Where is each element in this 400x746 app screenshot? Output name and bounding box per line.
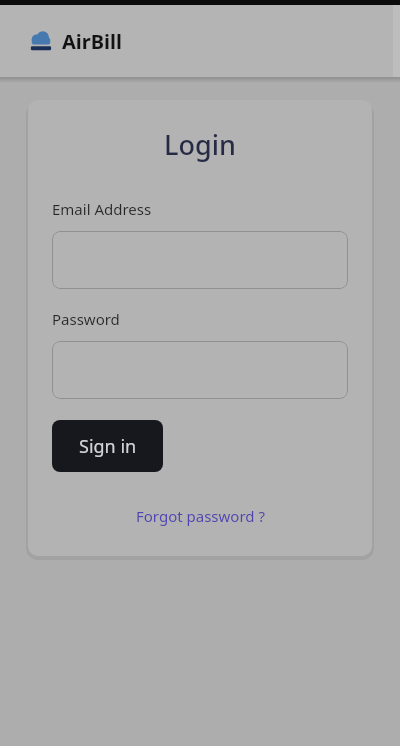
staticText: Sign in xyxy=(79,434,137,459)
staticText: Forgot password ? xyxy=(136,506,265,526)
staticText: Login xyxy=(52,126,348,163)
staticText: AirBill xyxy=(62,28,122,55)
staticText: Email Address xyxy=(52,199,152,219)
button[interactable] xyxy=(52,231,348,289)
button[interactable]: Sign in xyxy=(52,420,163,472)
button[interactable]: Forgot password ? xyxy=(136,506,265,526)
button[interactable] xyxy=(52,341,348,399)
staticText: Password xyxy=(52,309,120,329)
